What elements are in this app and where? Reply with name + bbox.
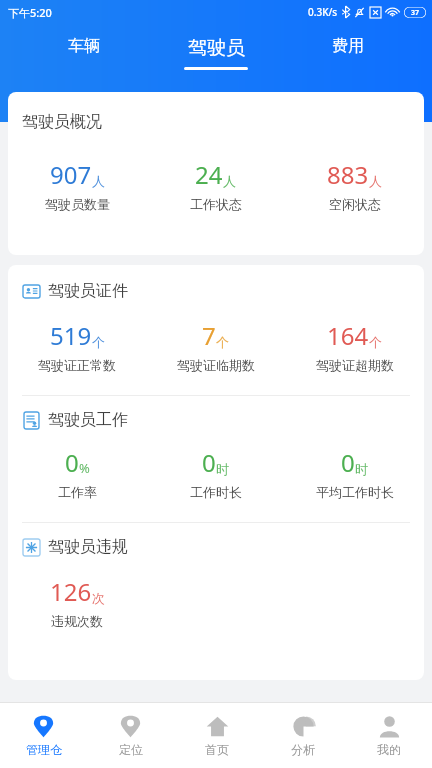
staticText: 驾驶员证件 (48, 281, 128, 301)
button[interactable]: 管理仓 (0, 703, 87, 768)
staticText: 人 (369, 173, 382, 189)
staticText: 0 (341, 446, 355, 479)
staticText: 管理仓 (26, 742, 62, 757)
staticText: 违规次数 (51, 613, 103, 629)
button[interactable]: 519 (8, 319, 146, 373)
staticText: 时 (216, 461, 229, 477)
staticText: 定位 (119, 742, 143, 757)
staticText: 人 (92, 173, 105, 189)
staticText: 126 (50, 575, 92, 608)
button[interactable]: 0 (8, 446, 146, 500)
staticText: 驾驶员工作 (48, 410, 128, 430)
staticText: 工作状态 (190, 196, 242, 212)
button[interactable]: 126 (8, 575, 146, 629)
staticText: 驾驶员 (188, 36, 245, 60)
button[interactable]: 分析 (260, 703, 346, 768)
staticText: 0 (202, 446, 216, 479)
staticText: 驾驶员数量 (45, 196, 110, 212)
staticText: 7 (202, 319, 216, 352)
button[interactable]: 883 (285, 158, 424, 212)
staticText: 工作时长 (190, 484, 242, 500)
staticText: 驾驶证超期数 (316, 357, 394, 373)
staticText: 个 (92, 334, 105, 350)
staticText: 驾驶员违规 (48, 537, 128, 557)
staticText: 下午5:20 (8, 5, 52, 20)
button[interactable]: 164 (285, 319, 424, 373)
staticText: 907 (50, 158, 92, 191)
staticText: 37 (411, 8, 420, 18)
staticText: 驾驶员概况 (22, 112, 102, 132)
staticText: 驾驶证临期数 (177, 357, 255, 373)
staticText: 164 (327, 319, 369, 352)
staticText: 519 (50, 319, 92, 352)
staticText: 次 (92, 590, 105, 606)
button[interactable]: 7 (146, 319, 285, 373)
staticText: 我的 (377, 742, 401, 757)
button[interactable]: 我的 (346, 703, 432, 768)
staticText: 工作率 (58, 484, 97, 500)
staticText: 人 (223, 173, 236, 189)
staticText: 空闲状态 (329, 196, 381, 212)
staticText: 0 (65, 446, 79, 479)
staticText: % (79, 459, 90, 477)
button[interactable]: 0 (285, 446, 424, 500)
button[interactable]: 907 (8, 158, 146, 212)
staticText: 首页 (205, 742, 229, 757)
staticText: 24 (195, 158, 223, 191)
button[interactable]: 0 (146, 446, 285, 500)
button[interactable]: 驾驶员 (168, 34, 264, 72)
staticText: 分析 (291, 742, 315, 757)
button[interactable]: 定位 (87, 703, 174, 768)
staticText: 驾驶证正常数 (38, 357, 116, 373)
button[interactable]: 首页 (174, 703, 260, 768)
staticText: 车辆 (68, 36, 100, 56)
button[interactable]: 车辆 (52, 34, 116, 69)
staticText: 0.3K/s (308, 5, 338, 19)
button[interactable]: 费用 (316, 34, 380, 69)
staticText: 883 (327, 158, 369, 191)
button[interactable]: 24 (146, 158, 285, 212)
staticText: 时 (355, 461, 368, 477)
staticText: 费用 (332, 36, 364, 56)
staticText: 个 (369, 334, 382, 350)
staticText: 平均工作时长 (316, 484, 394, 500)
staticText: 个 (216, 334, 229, 350)
